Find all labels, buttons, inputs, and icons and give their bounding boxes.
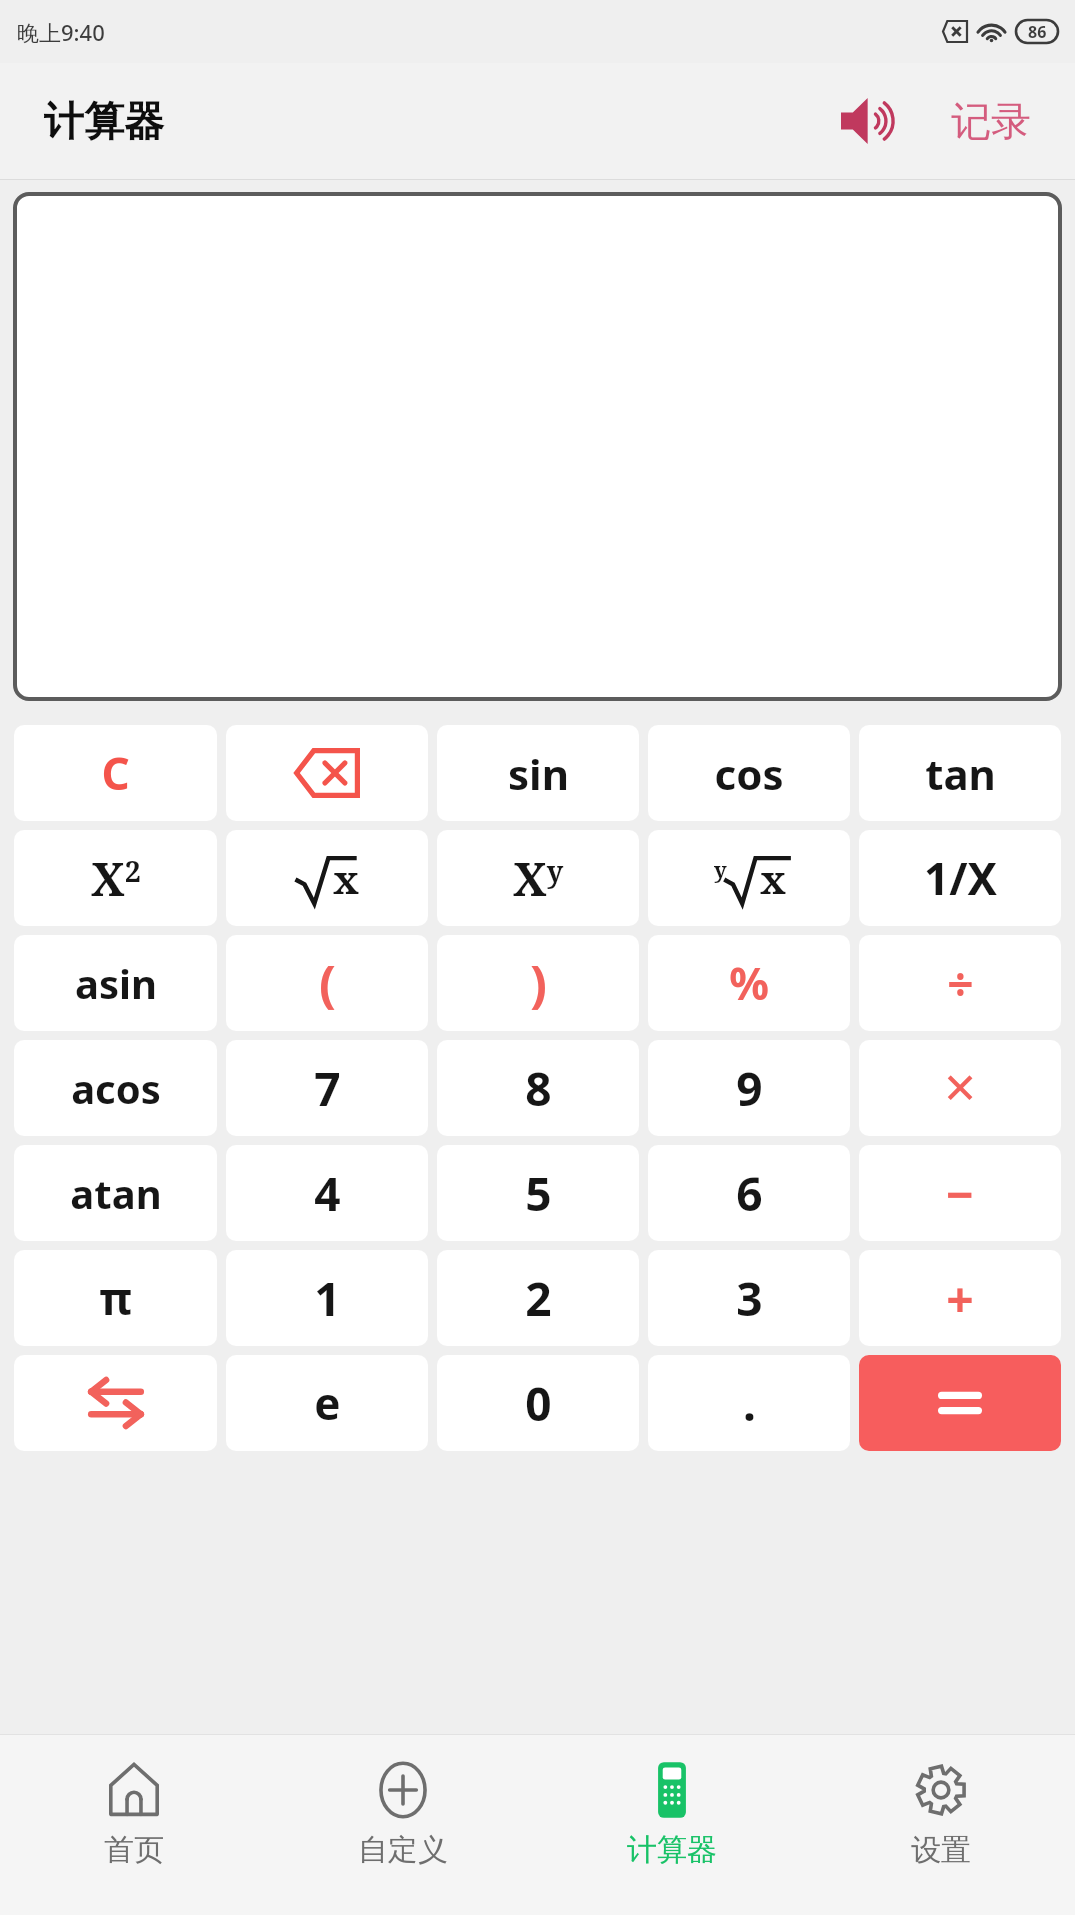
button[interactable]: y (648, 830, 850, 926)
staticText: sin (508, 745, 569, 802)
button[interactable]: 记录 (943, 86, 1039, 156)
staticText: 8 (525, 1057, 552, 1120)
staticText: 6 (736, 1162, 763, 1225)
button[interactable]: + (859, 1250, 1061, 1346)
button[interactable]: 1/X (859, 830, 1061, 926)
button[interactable]: π (14, 1250, 217, 1346)
staticText: 3 (736, 1267, 763, 1330)
button[interactable]: Swap (14, 1355, 217, 1451)
staticText: ) (530, 949, 547, 1017)
button[interactable]: Backspace (226, 725, 428, 821)
staticText: y (714, 854, 727, 884)
staticText: asin (75, 956, 157, 1010)
button[interactable]: cos (648, 725, 850, 821)
staticText: ✕ (942, 1064, 978, 1113)
button[interactable]: ÷ (859, 935, 1061, 1031)
staticText: 7 (314, 1057, 341, 1120)
staticText: tan (925, 745, 996, 802)
button[interactable]: 首页 (0, 1735, 268, 1915)
button[interactable]: atan (14, 1145, 217, 1241)
button[interactable]: 0 (437, 1355, 639, 1451)
button[interactable]: X2 (14, 830, 217, 926)
staticText: 4 (314, 1162, 341, 1225)
staticText: 86 (1028, 21, 1047, 43)
staticText: 2 (525, 1267, 552, 1330)
button[interactable]: x (226, 830, 428, 926)
staticText: ( (319, 949, 336, 1017)
button[interactable]: ✕ (859, 1040, 1061, 1136)
staticText: π (99, 1268, 132, 1328)
button[interactable]: 9 (648, 1040, 850, 1136)
staticText: . (743, 1372, 756, 1435)
button[interactable]: 计算器 (537, 1735, 806, 1915)
staticText: atan (70, 1166, 162, 1220)
button[interactable]: 6 (648, 1145, 850, 1241)
staticText: 首页 (104, 1831, 164, 1869)
button[interactable]: 3 (648, 1250, 850, 1346)
staticText: 5 (525, 1162, 552, 1225)
button[interactable]: acos (14, 1040, 217, 1136)
button[interactable]: sin (437, 725, 639, 821)
staticText: 设置 (911, 1831, 971, 1869)
button[interactable]: asin (14, 935, 217, 1031)
staticText: Xy (513, 847, 564, 910)
staticText: − (946, 1161, 974, 1226)
staticText: 计算器 (44, 96, 164, 146)
staticText: acos (71, 1061, 161, 1115)
staticText: 晚上9:40 (17, 17, 105, 47)
button[interactable]: e (226, 1355, 428, 1451)
button[interactable]: 4 (226, 1145, 428, 1241)
staticText: 计算器 (627, 1831, 717, 1869)
button[interactable]: 8 (437, 1040, 639, 1136)
button[interactable]: Sound (829, 78, 915, 164)
button[interactable]: − (859, 1145, 1061, 1241)
button[interactable]: % (648, 935, 850, 1031)
button[interactable]: Xy (437, 830, 639, 926)
staticText: x (760, 851, 786, 905)
staticText: C (101, 743, 130, 803)
button[interactable]: 5 (437, 1145, 639, 1241)
staticText: e (314, 1373, 341, 1433)
staticText: 0 (525, 1372, 552, 1435)
button[interactable]: ( (226, 935, 428, 1031)
button[interactable]: 7 (226, 1040, 428, 1136)
button[interactable]: 设置 (806, 1735, 1075, 1915)
staticText: 自定义 (358, 1831, 448, 1869)
button[interactable]: tan (859, 725, 1061, 821)
button[interactable]: 2 (437, 1250, 639, 1346)
button[interactable] (859, 1355, 1061, 1451)
button[interactable]: 自定义 (268, 1735, 537, 1915)
staticText: 记录 (951, 96, 1031, 146)
staticText: cos (714, 745, 784, 802)
button[interactable]: C (14, 725, 217, 821)
staticText: ÷ (947, 952, 974, 1015)
staticText: 9 (736, 1057, 763, 1120)
staticText: 1 (314, 1267, 341, 1330)
staticText: X2 (91, 847, 141, 910)
staticText: % (729, 953, 769, 1013)
button[interactable]: 1 (226, 1250, 428, 1346)
button[interactable]: ) (437, 935, 639, 1031)
staticText: x (333, 851, 359, 905)
button[interactable]: . (648, 1355, 850, 1451)
staticText: 1/X (924, 848, 997, 908)
staticText: + (946, 1266, 974, 1331)
